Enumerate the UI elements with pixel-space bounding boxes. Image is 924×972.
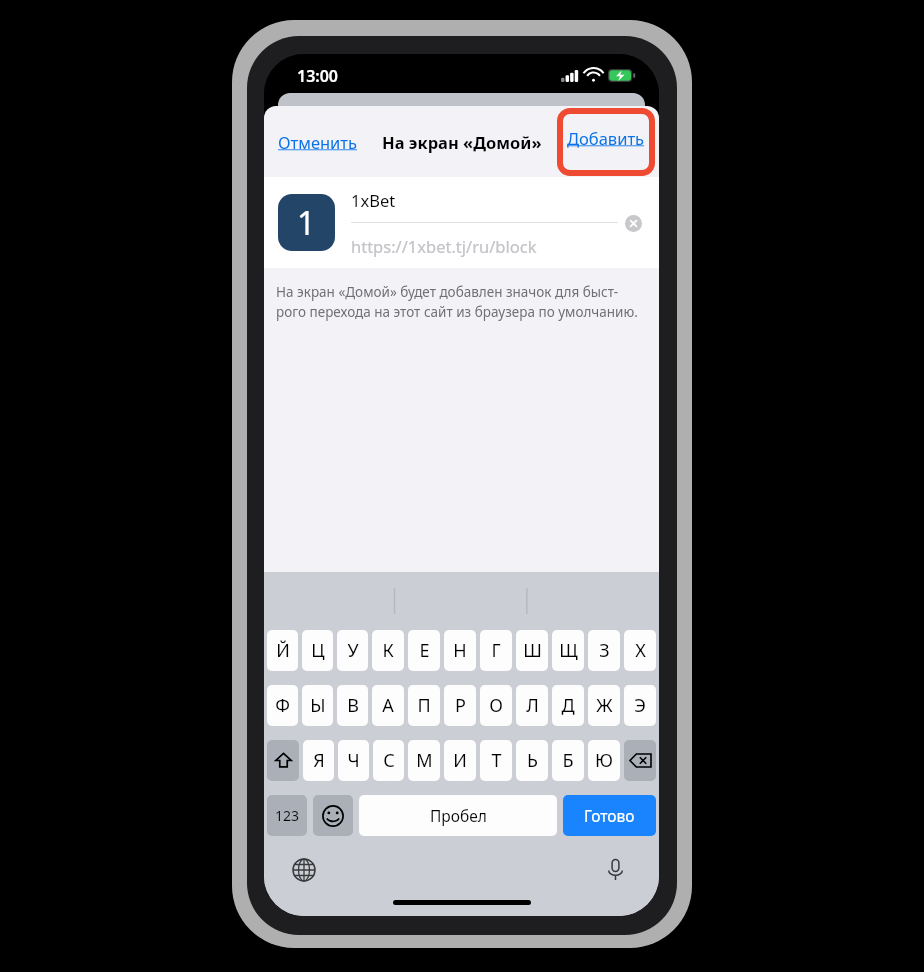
staticText: К — [382, 638, 394, 663]
button[interactable]: Добавить — [558, 109, 654, 175]
staticText: Ж — [596, 693, 613, 718]
other: Shift — [275, 752, 292, 769]
staticText: 123 — [275, 806, 300, 825]
staticText: Ы — [310, 693, 326, 718]
staticText: В — [347, 693, 359, 718]
staticText: Т — [491, 748, 502, 773]
staticText: Ш — [523, 638, 542, 663]
staticText: Ь — [527, 748, 538, 773]
staticText: 13:00 — [297, 65, 339, 87]
staticText: Э — [634, 693, 646, 718]
staticText: С — [383, 748, 395, 773]
button[interactable]: О — [480, 685, 512, 726]
button[interactable]: Отменить — [275, 125, 361, 159]
staticText: 1xBet — [351, 189, 396, 211]
button[interactable]: С — [373, 740, 404, 781]
staticText: Щ — [559, 638, 578, 663]
button[interactable]: Ц — [302, 630, 333, 671]
button[interactable]: М — [408, 740, 440, 781]
staticText: Х — [635, 638, 646, 663]
button[interactable]: Ш — [516, 630, 548, 671]
button[interactable]: Б — [552, 740, 584, 781]
staticText: Ч — [347, 748, 360, 773]
button[interactable]: У — [337, 630, 368, 671]
staticText: А — [382, 693, 394, 718]
staticText: Л — [526, 693, 539, 718]
button[interactable]: А — [372, 685, 404, 726]
staticText: Пробел — [430, 805, 487, 826]
button[interactable]: Н — [444, 630, 476, 671]
button[interactable]: Ы — [302, 685, 333, 726]
button[interactable]: Ч — [338, 740, 369, 781]
staticText: Б — [562, 748, 574, 773]
button[interactable]: Ь — [516, 740, 548, 781]
button[interactable]: Х — [624, 630, 656, 671]
button[interactable]: К — [372, 630, 404, 671]
button[interactable]: Clear text — [618, 208, 648, 238]
staticText: П — [417, 693, 431, 718]
button[interactable]: В — [337, 685, 368, 726]
button[interactable]: Готово — [563, 795, 656, 836]
button[interactable]: Ф — [267, 685, 298, 726]
button[interactable]: Backspace — [624, 740, 656, 781]
staticText: Я — [313, 748, 325, 773]
button[interactable]: Ю — [588, 740, 620, 781]
staticText: Добавить — [567, 127, 645, 149]
staticText: Р — [455, 693, 466, 718]
staticText: 1 — [297, 201, 316, 245]
button[interactable]: Shift — [267, 740, 299, 781]
button[interactable]: З — [588, 630, 620, 671]
button[interactable]: 123 — [267, 795, 307, 836]
button[interactable]: Й — [267, 630, 298, 671]
staticText: На экран «Домой» — [382, 131, 542, 153]
staticText: https://1xbet.tj/ru/block — [351, 235, 537, 257]
button[interactable]: И — [444, 740, 476, 781]
staticText: Ю — [595, 748, 613, 773]
button[interactable]: Д — [552, 685, 584, 726]
staticText: У — [347, 638, 359, 663]
staticText: Ф — [275, 693, 290, 718]
button[interactable]: Emoji — [313, 795, 353, 836]
button[interactable]: П — [408, 685, 440, 726]
staticText: Г — [491, 638, 501, 663]
staticText: М — [416, 748, 433, 773]
button[interactable]: Ж — [588, 685, 620, 726]
button[interactable]: Г — [480, 630, 512, 671]
button[interactable]: Т — [480, 740, 512, 781]
staticText: Готово — [584, 805, 635, 826]
button[interactable]: Л — [516, 685, 548, 726]
staticText: Е — [419, 638, 430, 663]
button[interactable]: Dictation — [597, 852, 633, 888]
other: Backspace — [630, 753, 651, 768]
staticText: На экран «Домой» будет добавлен значок д… — [276, 283, 638, 321]
button[interactable]: Щ — [552, 630, 584, 671]
button[interactable]: Пробел — [359, 795, 557, 836]
staticText: Отменить — [278, 131, 358, 153]
button[interactable]: Е — [408, 630, 440, 671]
staticText: З — [599, 638, 610, 663]
button[interactable]: Я — [303, 740, 334, 781]
staticText: И — [453, 748, 467, 773]
button[interactable]: Э — [624, 685, 656, 726]
staticText: Д — [561, 693, 575, 718]
button[interactable]: Р — [444, 685, 476, 726]
staticText: Ц — [311, 638, 325, 663]
button[interactable]: Change keyboard language — [286, 852, 322, 888]
staticText: О — [489, 693, 503, 718]
staticText: Й — [276, 638, 290, 663]
staticText: Н — [453, 638, 467, 663]
